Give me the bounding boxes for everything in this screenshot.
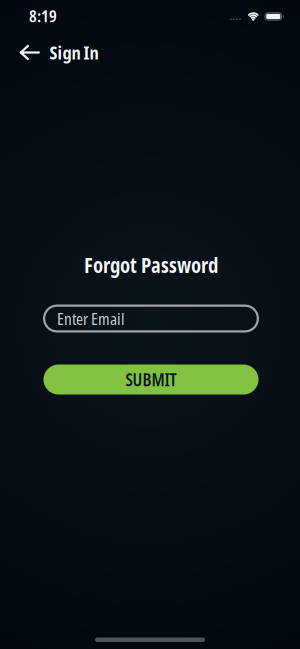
button[interactable]: Enter Email	[43, 304, 259, 332]
staticText: Enter Email	[57, 307, 125, 330]
staticText: Sign In	[49, 40, 98, 65]
button[interactable]: Back	[0, 32, 98, 73]
staticText: Forgot Password	[84, 251, 218, 279]
button[interactable]: SUBMIT	[43, 364, 258, 394]
staticText: SUBMIT	[125, 368, 176, 391]
staticText: 8:19	[29, 5, 57, 27]
